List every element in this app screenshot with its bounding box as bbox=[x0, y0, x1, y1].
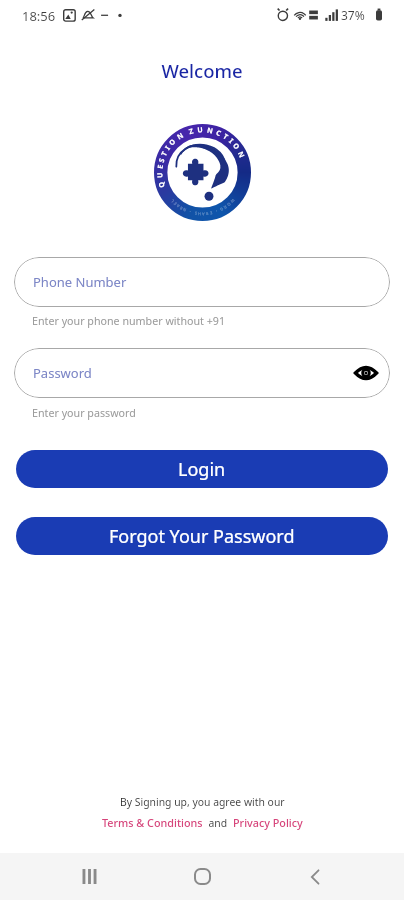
staticText: Enter your password bbox=[32, 406, 136, 421]
button[interactable]: Phone Number bbox=[14, 257, 390, 307]
button[interactable]: Back bbox=[291, 853, 338, 900]
staticText: 37% bbox=[341, 7, 365, 23]
staticText: Password bbox=[33, 364, 92, 382]
button[interactable]: Privacy Policy bbox=[233, 815, 303, 830]
staticText: 18:56 bbox=[22, 7, 56, 25]
staticText: Enter your phone number without +91 bbox=[32, 314, 226, 329]
staticText: By Signing up, you agree with our bbox=[120, 795, 285, 809]
button[interactable]: Password bbox=[14, 348, 390, 398]
button[interactable]: Terms & Conditions bbox=[102, 815, 203, 830]
button[interactable]: Forgot Your Password bbox=[16, 517, 388, 555]
staticText: Phone Number bbox=[33, 273, 127, 291]
button[interactable]: Login bbox=[16, 450, 388, 488]
staticText: and bbox=[203, 816, 233, 830]
button[interactable]: Show password bbox=[351, 358, 381, 388]
staticText: Forgot Your Password bbox=[109, 524, 295, 549]
button[interactable]: Home bbox=[179, 853, 226, 900]
staticText: Login bbox=[178, 457, 226, 482]
button[interactable]: Recents bbox=[66, 853, 113, 900]
staticText: Welcome bbox=[161, 58, 243, 82]
